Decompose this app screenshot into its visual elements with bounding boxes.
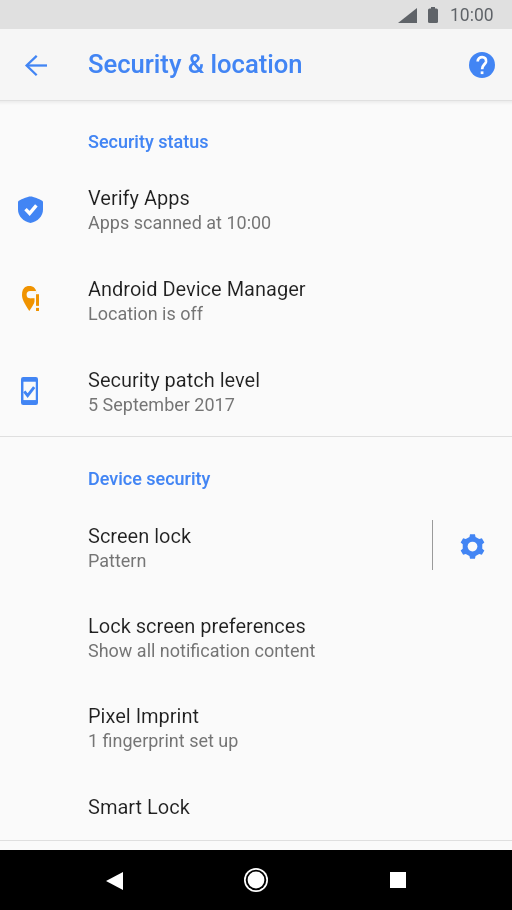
button[interactable]: Home bbox=[208, 850, 304, 910]
staticText: Screen lock bbox=[88, 524, 192, 547]
staticText: 10:00 bbox=[450, 5, 494, 26]
staticText: 1 fingerprint set up bbox=[88, 730, 239, 751]
staticText: Show all notification content bbox=[88, 640, 316, 661]
staticText: Security & location bbox=[88, 49, 303, 79]
button[interactable]: Help bbox=[458, 41, 506, 89]
button[interactable]: Recent apps bbox=[349, 850, 445, 910]
button[interactable]: Security patch level bbox=[0, 356, 512, 422]
staticText: 5 September 2017 bbox=[88, 394, 235, 415]
staticText: Apps scanned at 10:00 bbox=[88, 212, 272, 233]
button[interactable]: Smart Lock bbox=[0, 783, 512, 849]
staticText: Android Device Manager bbox=[88, 277, 306, 300]
staticText: Smart Lock bbox=[88, 795, 190, 818]
button[interactable]: Verify Apps bbox=[0, 174, 512, 240]
staticText: Pattern bbox=[88, 550, 147, 571]
staticText: Lock screen preferences bbox=[88, 614, 306, 637]
button[interactable]: Screen lock bbox=[0, 512, 432, 578]
staticText: Security patch level bbox=[88, 368, 261, 391]
staticText: Device security bbox=[88, 468, 211, 489]
button[interactable]: Navigate up bbox=[11, 41, 59, 89]
staticText: Verify Apps bbox=[88, 186, 190, 209]
button[interactable]: Android Device Manager bbox=[0, 265, 512, 331]
button[interactable]: Screen lock settings bbox=[433, 512, 512, 578]
button[interactable]: Back bbox=[66, 850, 162, 910]
staticText: Security status bbox=[88, 131, 209, 152]
button[interactable]: Lock screen preferences bbox=[0, 602, 512, 668]
staticText: Location is off bbox=[88, 303, 204, 324]
button[interactable]: Pixel Imprint bbox=[0, 692, 512, 758]
staticText: Pixel Imprint bbox=[88, 704, 200, 727]
